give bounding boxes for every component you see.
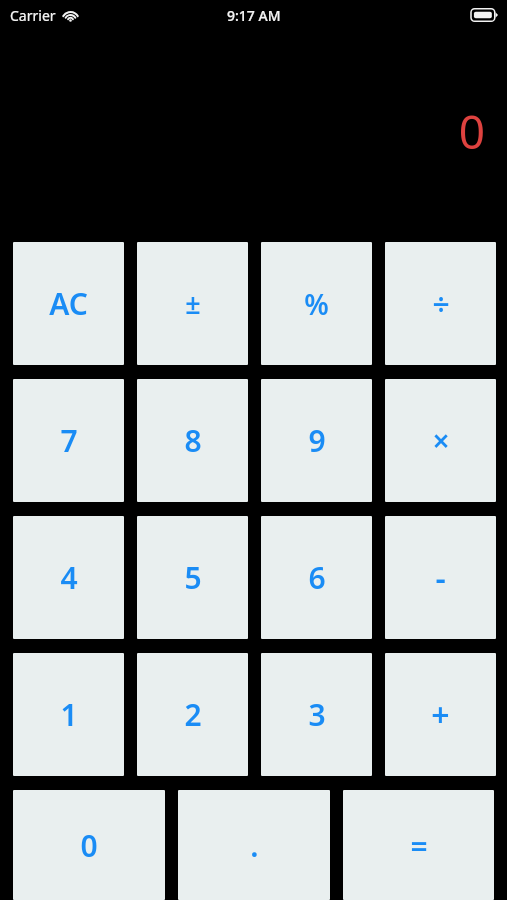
- staticText: %: [304, 285, 329, 323]
- other: Wi-Fi signal: [62, 9, 79, 22]
- button[interactable]: =: [343, 790, 494, 900]
- staticText: 3: [308, 694, 326, 735]
- staticText: -: [435, 556, 446, 600]
- staticText: ÷: [432, 283, 450, 324]
- staticText: +: [431, 693, 450, 737]
- button[interactable]: ×: [385, 379, 496, 502]
- button[interactable]: 6: [261, 516, 372, 639]
- button[interactable]: .: [178, 790, 330, 900]
- staticText: 6: [308, 557, 326, 598]
- button[interactable]: %: [261, 242, 372, 365]
- staticText: 2: [184, 694, 202, 735]
- staticText: .: [250, 825, 259, 866]
- staticText: 8: [184, 420, 202, 461]
- staticText: 1: [60, 694, 78, 735]
- button[interactable]: ±: [137, 242, 248, 365]
- staticText: 5: [184, 557, 202, 598]
- button[interactable]: 0: [13, 790, 165, 900]
- staticText: =: [410, 825, 428, 866]
- button[interactable]: 9: [261, 379, 372, 502]
- button[interactable]: 4: [13, 516, 124, 639]
- staticText: 7: [60, 420, 78, 461]
- button[interactable]: 7: [13, 379, 124, 502]
- staticText: 0: [458, 100, 485, 163]
- staticText: 4: [60, 557, 78, 598]
- button[interactable]: ÷: [385, 242, 496, 365]
- button[interactable]: -: [385, 516, 496, 639]
- staticText: 0: [80, 825, 98, 866]
- button[interactable]: 2: [137, 653, 248, 776]
- other: Battery full: [471, 8, 498, 22]
- staticText: Carrier: [10, 6, 56, 25]
- button[interactable]: +: [385, 653, 496, 776]
- staticText: ±: [185, 285, 201, 322]
- staticText: 9: [308, 420, 326, 461]
- button[interactable]: 8: [137, 379, 248, 502]
- staticText: 9:17 AM: [227, 6, 281, 25]
- staticText: ×: [432, 420, 450, 461]
- button[interactable]: 1: [13, 653, 124, 776]
- staticText: AC: [49, 283, 88, 324]
- button[interactable]: 5: [137, 516, 248, 639]
- button[interactable]: AC: [13, 242, 124, 365]
- button[interactable]: 3: [261, 653, 372, 776]
